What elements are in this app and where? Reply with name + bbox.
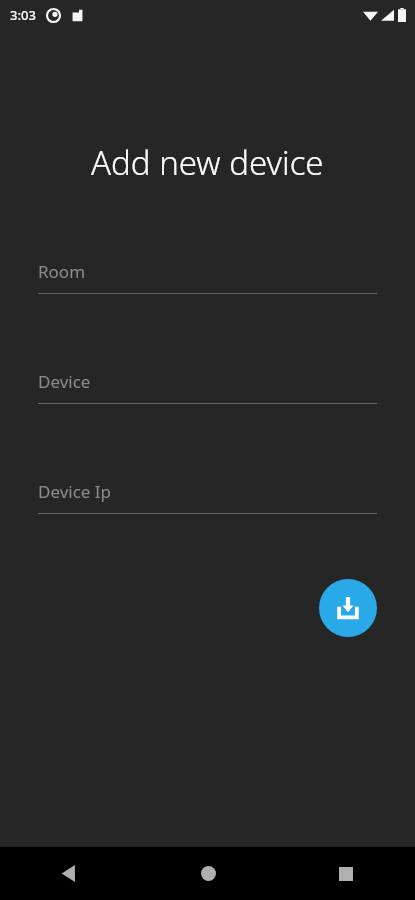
staticText: 3:03 — [10, 6, 36, 24]
staticText: Device — [38, 370, 91, 393]
button[interactable]: Room — [38, 250, 377, 294]
staticText: Add new device — [91, 140, 324, 185]
button[interactable]: Device — [38, 360, 377, 404]
button[interactable]: Home — [139, 847, 277, 900]
staticText: Room — [38, 260, 86, 283]
button[interactable]: Recent apps — [277, 847, 415, 900]
button[interactable]: Device Ip — [38, 470, 377, 514]
staticText: Device Ip — [38, 480, 112, 503]
button[interactable]: Back — [0, 847, 139, 900]
button[interactable]: Save device — [319, 579, 377, 637]
